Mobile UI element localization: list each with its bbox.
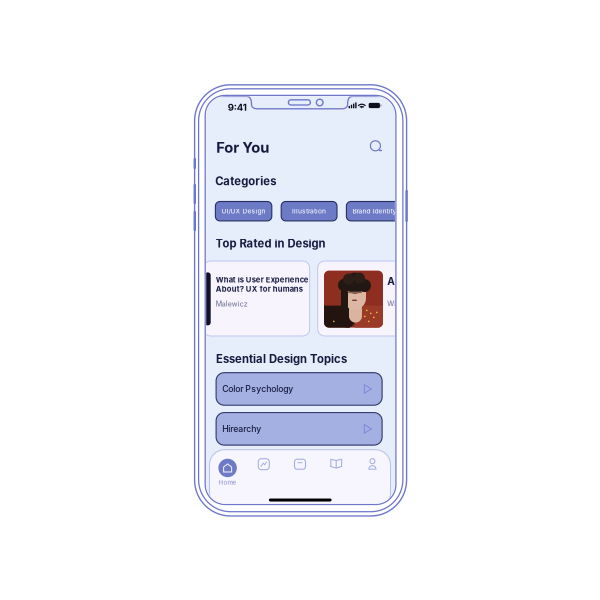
- staticText: What is User Experience About? UX for hu…: [216, 275, 309, 294]
- button[interactable]: Stats: [246, 450, 282, 489]
- staticText: Art of: [387, 275, 415, 287]
- button[interactable]: Profile: [354, 450, 390, 489]
- staticText: Illustration: [292, 207, 326, 215]
- button[interactable]: What is User Experience About? UX for hu…: [204, 261, 310, 336]
- staticText: Top Rated in Design: [216, 237, 326, 250]
- staticText: Brand Identity: [353, 207, 397, 215]
- staticText: Malewicz: [216, 300, 248, 308]
- staticText: 9:41: [228, 101, 247, 113]
- staticText: Will: [387, 300, 400, 308]
- button[interactable]: Home: [209, 450, 246, 489]
- button[interactable]: Search: [370, 140, 384, 154]
- staticText: For You: [216, 138, 269, 156]
- staticText: Color Psychology: [222, 384, 293, 394]
- staticText: Categories: [215, 174, 276, 188]
- button[interactable]: Illustration: [281, 201, 337, 221]
- staticText: Home: [219, 479, 237, 486]
- button[interactable]: Art of: [318, 261, 424, 336]
- button[interactable]: Color Psychology: [216, 373, 382, 405]
- button[interactable]: Library: [318, 450, 354, 489]
- button[interactable]: Schedule: [282, 450, 318, 489]
- staticText: Essential Design Topics: [216, 352, 347, 366]
- button[interactable]: Brand Identity: [346, 201, 403, 221]
- button[interactable]: UI/UX Design: [215, 201, 272, 221]
- button[interactable]: Hirearchy: [216, 413, 382, 445]
- staticText: Hirearchy: [222, 424, 261, 434]
- staticText: UI/UX Design: [222, 207, 266, 215]
